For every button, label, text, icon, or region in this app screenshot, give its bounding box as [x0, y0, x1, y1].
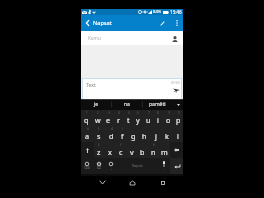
button[interactable]: 4 [113, 110, 123, 126]
staticText: 7 [148, 111, 150, 115]
staticText: t [127, 115, 130, 125]
button[interactable]: ň [148, 142, 159, 158]
staticText: 3 [108, 111, 110, 115]
staticText: 15:46 [170, 9, 182, 15]
staticText: í [122, 127, 123, 131]
button[interactable]: Shift [81, 142, 94, 158]
staticText: 123 [84, 166, 90, 170]
button[interactable]: Language [93, 158, 105, 174]
staticText: l [177, 131, 179, 141]
staticText: a [85, 131, 90, 141]
button[interactable]: Symbols [81, 158, 93, 174]
button[interactable]: Enter [170, 158, 183, 174]
button[interactable]: ď [105, 126, 117, 142]
button[interactable]: 3 [103, 110, 113, 126]
button[interactable]: je [81, 99, 111, 110]
staticText: u [146, 115, 151, 125]
staticText: f [121, 131, 124, 141]
button[interactable]: na [111, 99, 142, 110]
button[interactable]: š [93, 126, 105, 142]
staticText: š [98, 127, 100, 131]
staticText: e [106, 115, 111, 125]
button[interactable]: Compose [155, 15, 170, 31]
staticText: Komu [88, 35, 101, 41]
staticText: y [136, 115, 140, 125]
staticText: n [151, 147, 156, 157]
button[interactable]: m [159, 142, 170, 158]
button[interactable]: Space [117, 158, 158, 174]
button[interactable]: 1 [81, 110, 92, 126]
staticText: o [166, 115, 171, 125]
staticText: h [142, 131, 147, 141]
staticText: paměti [149, 101, 166, 108]
button[interactable]: 7 [143, 110, 153, 126]
staticText: 1 [86, 111, 88, 115]
staticText: q [84, 115, 89, 125]
button[interactable]: á [81, 126, 93, 142]
staticText: k [165, 131, 169, 141]
staticText: s [97, 131, 101, 141]
button[interactable]: Backspace [170, 142, 183, 158]
button[interactable]: Home [122, 176, 142, 189]
staticText: ď [111, 127, 113, 131]
button[interactable]: More options [170, 15, 183, 31]
staticText: 8 [157, 111, 159, 115]
staticText: b [140, 147, 145, 157]
button[interactable]: Comma [105, 158, 117, 174]
button[interactable]: b [137, 142, 148, 158]
staticText: j [155, 131, 157, 141]
staticText: na [124, 101, 130, 108]
button[interactable]: j [150, 126, 161, 142]
staticText: 84% [153, 9, 162, 15]
button[interactable]: More suggestions [173, 99, 183, 110]
staticText: Napsat [93, 19, 112, 27]
staticText: 2 [97, 111, 99, 115]
staticText: 0 [178, 111, 180, 115]
button[interactable]: g [128, 126, 139, 142]
staticText: m [161, 147, 168, 157]
staticText: , [111, 166, 112, 170]
button[interactable]: x [104, 142, 115, 158]
staticText: . [164, 167, 165, 171]
staticText: ň [153, 143, 155, 147]
button[interactable]: 6 [133, 110, 143, 126]
button[interactable]: č [115, 142, 126, 158]
staticText: 4 [118, 111, 120, 115]
staticText: i [157, 115, 159, 125]
button[interactable]: Back [81, 15, 93, 31]
button[interactable]: l [172, 126, 183, 142]
staticText: CZ [97, 166, 101, 170]
button[interactable]: k [161, 126, 172, 142]
staticText: x [108, 147, 112, 157]
staticText: 6 [137, 111, 139, 115]
button[interactable]: 9 [163, 110, 173, 126]
staticText: p [176, 115, 181, 125]
button[interactable]: 2 [92, 110, 103, 126]
staticText: 5 [128, 111, 130, 115]
button[interactable]: Send [172, 87, 180, 93]
staticText: g [131, 131, 136, 141]
staticText: d [109, 131, 114, 141]
button[interactable]: 8 [153, 110, 163, 126]
staticText: č [120, 143, 122, 147]
staticText: c [119, 147, 123, 157]
button[interactable]: 5 [123, 110, 133, 126]
button[interactable]: í [117, 126, 128, 142]
button[interactable]: Text [82, 78, 182, 99]
button[interactable]: h [139, 126, 150, 142]
staticText: w [95, 115, 101, 125]
button[interactable]: paměti [142, 99, 173, 110]
button[interactable]: Recent apps [153, 176, 173, 189]
staticText: Napsat [132, 164, 143, 168]
button[interactable]: 0 [173, 110, 183, 126]
button[interactable]: Voice input [158, 158, 170, 174]
staticText: je [94, 101, 99, 108]
button[interactable]: v [126, 142, 137, 158]
staticText: r [117, 115, 120, 125]
staticText: Text [86, 81, 96, 88]
button[interactable]: Komu [81, 31, 183, 45]
staticText: 0/160 [171, 81, 180, 85]
button[interactable]: Pick contact [169, 33, 180, 44]
button[interactable]: Hide keyboard [92, 176, 112, 189]
button[interactable]: ž [94, 142, 104, 158]
